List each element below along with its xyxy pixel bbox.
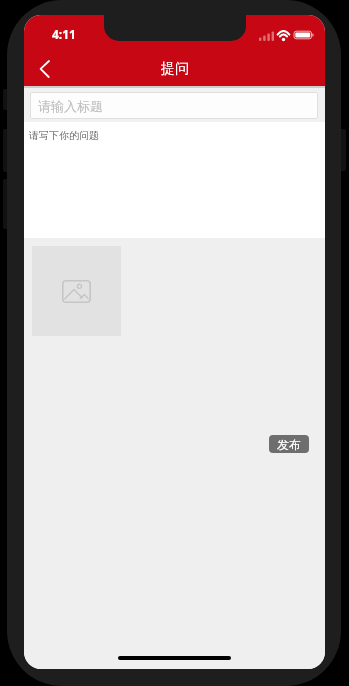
staticText: 提问 — [161, 60, 189, 77]
staticText: 请输入标题 — [38, 98, 103, 114]
button[interactable] — [30, 55, 64, 83]
staticText: 4:11 — [52, 26, 76, 42]
staticText: 请写下你的问题 — [29, 129, 99, 142]
button[interactable]: 发布 — [269, 435, 309, 453]
button[interactable] — [32, 246, 121, 336]
button[interactable]: 请输入标题 — [30, 92, 318, 119]
button[interactable]: 请写下你的问题 — [24, 121, 325, 238]
staticText: 发布 — [277, 437, 301, 452]
